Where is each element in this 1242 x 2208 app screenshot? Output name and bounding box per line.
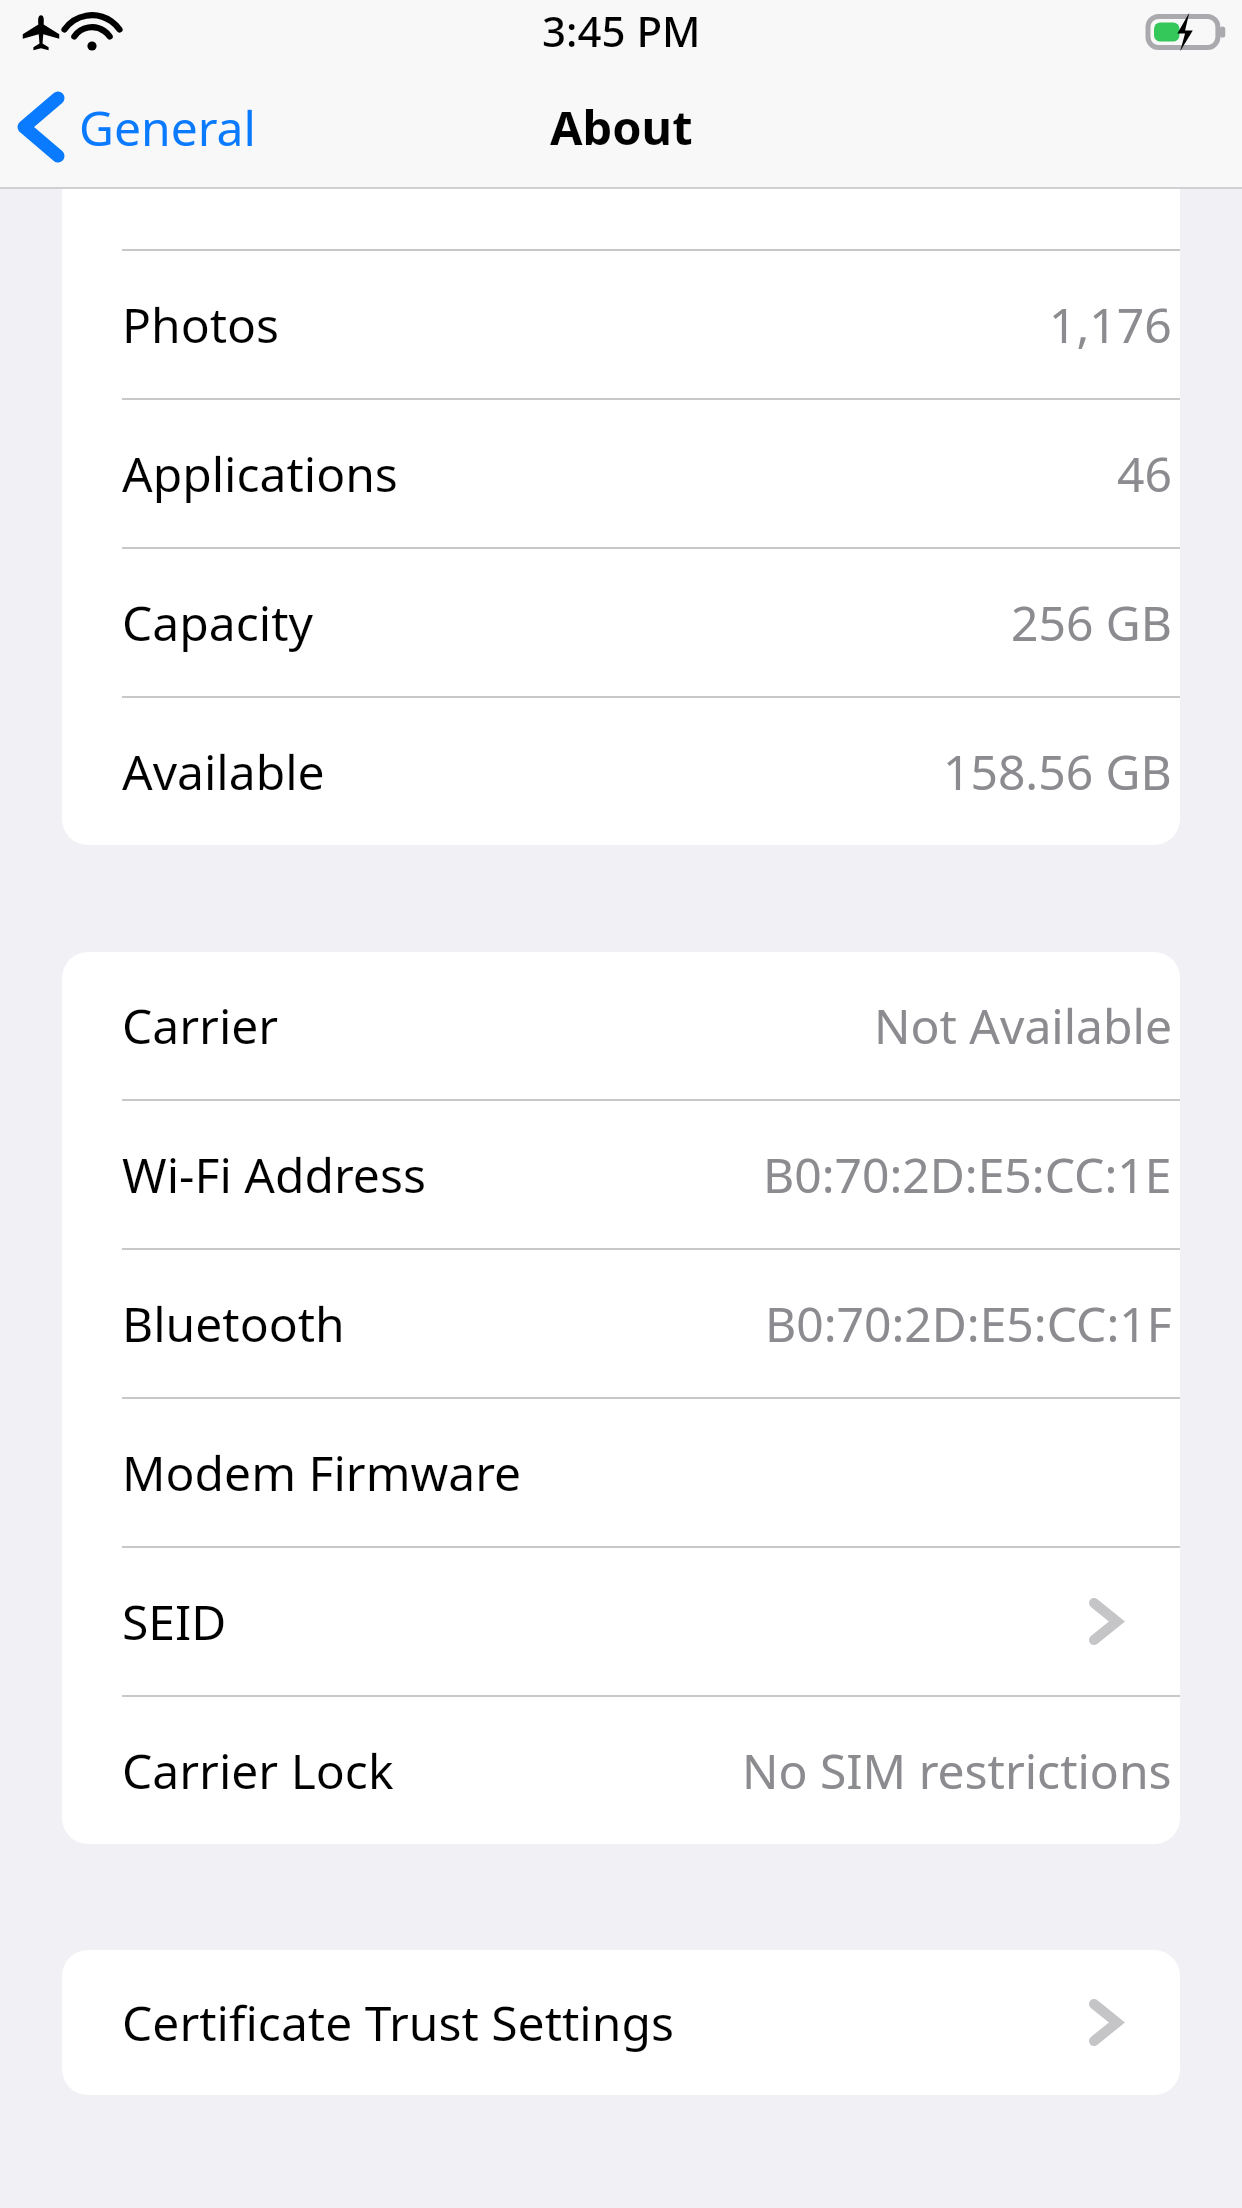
staticText: 46 (1117, 441, 1172, 506)
button[interactable]: Wi-Fi Address (62, 1101, 1180, 1248)
staticText: Certificate Trust Settings (122, 1990, 674, 2055)
staticText: Carrier (122, 993, 279, 1058)
staticText: Available (122, 739, 325, 804)
staticText: 1,176 (1049, 292, 1172, 357)
staticText: Applications (122, 441, 398, 506)
button[interactable]: Capacity (62, 549, 1180, 696)
button[interactable]: Available (62, 698, 1180, 845)
staticText: Photos (122, 292, 280, 357)
other: Back to General (24, 98, 58, 156)
staticText: 158.56 GB (943, 739, 1172, 804)
button[interactable]: Back to General (24, 79, 256, 175)
staticText: No SIM restrictions (742, 1738, 1172, 1803)
button[interactable]: Certificate Trust Settings (62, 1950, 1180, 2095)
button[interactable]: Modem Firmware (62, 1399, 1180, 1546)
button[interactable]: SEID (62, 1548, 1180, 1695)
button[interactable]: Carrier Lock (62, 1697, 1180, 1844)
button[interactable]: Applications (62, 400, 1180, 547)
button[interactable]: Bluetooth (62, 1250, 1180, 1397)
staticText: 3:45 PM (542, 2, 701, 59)
button[interactable]: Carrier (62, 952, 1180, 1099)
staticText: Wi-Fi Address (122, 1142, 426, 1207)
staticText: B0:70:2D:E5:CC:1F (765, 1291, 1172, 1356)
staticText: Not Available (874, 993, 1172, 1058)
staticText: B0:70:2D:E5:CC:1E (763, 1142, 1172, 1207)
button[interactable]: Photos (62, 251, 1180, 398)
staticText: Carrier Lock (122, 1738, 394, 1803)
staticText: General (79, 95, 256, 160)
staticText: About (550, 95, 693, 159)
staticText: 256 GB (1011, 590, 1172, 655)
staticText: Modem Firmware (122, 1440, 522, 1505)
staticText: SEID (122, 1589, 227, 1654)
staticText: Bluetooth (122, 1291, 345, 1356)
staticText: Capacity (122, 590, 313, 655)
